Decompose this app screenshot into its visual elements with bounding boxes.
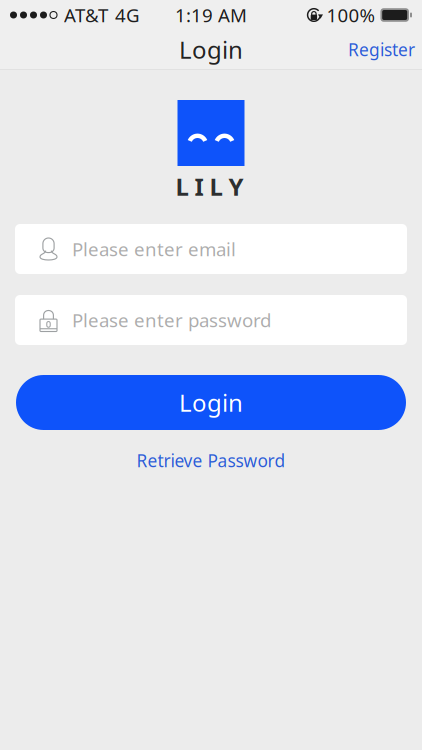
- staticText: Login: [179, 34, 243, 65]
- button[interactable]: Login: [0, 375, 422, 430]
- staticText: AT&T: [64, 3, 108, 27]
- staticText: Please enter password: [72, 308, 271, 332]
- staticText: Register: [348, 38, 415, 61]
- staticText: Please enter email: [72, 237, 236, 261]
- staticText: 100%: [326, 3, 375, 27]
- staticText: 4G: [115, 3, 140, 27]
- staticText: Login: [179, 387, 243, 418]
- button[interactable]: Register: [339, 31, 422, 68]
- button[interactable]: Retrieve Password: [126, 444, 295, 477]
- staticText: LILY: [175, 171, 243, 202]
- staticText: Retrieve Password: [136, 449, 285, 472]
- staticText: 1:19 AM: [175, 3, 247, 27]
